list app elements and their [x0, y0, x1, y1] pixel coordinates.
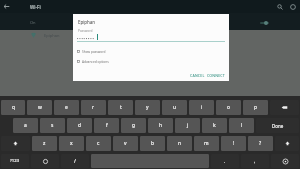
button[interactable]: Search: [273, 0, 286, 13]
button[interactable]: Epiphan: [0, 30, 300, 40]
button[interactable]: /: [61, 154, 89, 168]
staticText: z: [43, 140, 46, 147]
button[interactable]: .: [211, 154, 239, 168]
button[interactable]: l: [229, 118, 254, 133]
button[interactable]: Voice input: [271, 154, 299, 168]
staticText: f: [106, 122, 108, 129]
staticText: g: [132, 122, 135, 129]
staticText: q: [12, 104, 15, 111]
staticText: v: [124, 140, 127, 147]
button[interactable]: ,: [241, 154, 269, 168]
button[interactable]: f: [94, 118, 119, 133]
button[interactable]: Shift: [275, 136, 299, 151]
button[interactable]: Help: [286, 0, 299, 13]
staticText: e: [65, 104, 68, 111]
button[interactable]: Wi-Fi toggle: [259, 19, 271, 26]
staticText: b: [151, 140, 154, 147]
staticText: l: [241, 122, 243, 129]
button[interactable]: CONNECT: [204, 70, 228, 81]
button[interactable]: v: [113, 136, 138, 151]
staticText: d: [78, 122, 81, 129]
button[interactable]: Show password: [73, 49, 229, 54]
staticText: Show password: [82, 50, 106, 54]
staticText: s: [51, 122, 54, 129]
staticText: h: [159, 122, 163, 129]
staticText: i: [201, 104, 203, 111]
button[interactable]: b: [140, 136, 165, 151]
button[interactable]: !: [221, 136, 246, 151]
button[interactable]: k: [202, 118, 227, 133]
button[interactable]: p: [243, 100, 268, 115]
staticText: ?: [259, 140, 262, 147]
button[interactable]: g: [121, 118, 146, 133]
button[interactable]: t: [108, 100, 133, 115]
button[interactable]: u: [162, 100, 187, 115]
button[interactable]: Done: [256, 118, 299, 133]
button[interactable]: Backspace: [270, 100, 299, 115]
button[interactable]: z: [32, 136, 57, 151]
staticText: Advanced options: [82, 60, 109, 64]
staticText: p: [254, 104, 257, 111]
staticText: CONNECT: [207, 73, 225, 78]
staticText: n: [178, 140, 182, 147]
button[interactable]: ?123: [1, 154, 29, 168]
button[interactable]: q: [1, 100, 25, 115]
staticText: .: [224, 158, 226, 165]
button[interactable]: ?: [248, 136, 273, 151]
staticText: Epiphan: [44, 33, 60, 38]
button[interactable]: Advanced options: [73, 59, 229, 64]
staticText: j: [187, 122, 189, 129]
staticText: Done: [272, 123, 284, 129]
staticText: ,: [254, 158, 256, 165]
staticText: u: [173, 104, 177, 111]
staticText: ?123: [10, 158, 20, 164]
staticText: k: [213, 122, 216, 129]
staticText: r: [92, 104, 95, 111]
staticText: CANCEL: [190, 73, 205, 78]
staticText: a: [24, 122, 27, 129]
staticText: Password: [78, 29, 93, 33]
staticText: !: [233, 140, 235, 147]
button[interactable]: r: [81, 100, 106, 115]
button[interactable]: y: [135, 100, 160, 115]
button[interactable]: n: [167, 136, 192, 151]
staticText: w: [38, 104, 42, 111]
staticText: Epiphan: [78, 19, 96, 25]
button[interactable]: a: [13, 118, 38, 133]
button[interactable]: i: [189, 100, 214, 115]
button[interactable]: Shift: [1, 136, 30, 151]
button[interactable]: o: [216, 100, 241, 115]
button[interactable]: s: [40, 118, 65, 133]
button[interactable]: w: [27, 100, 52, 115]
button[interactable]: d: [67, 118, 92, 133]
button[interactable]: Navigate up: [0, 0, 13, 13]
button[interactable]: x: [59, 136, 84, 151]
staticText: c: [97, 140, 100, 147]
button[interactable]: m: [194, 136, 219, 151]
staticText: /: [74, 158, 76, 165]
button[interactable]: CANCEL: [187, 70, 208, 81]
button[interactable]: j: [175, 118, 200, 133]
staticText: m: [204, 140, 209, 147]
button[interactable]: Emoji: [31, 154, 59, 168]
button[interactable]: e: [54, 100, 79, 115]
staticText: On: [30, 20, 36, 25]
button[interactable]: h: [148, 118, 173, 133]
staticText: ••••••••: [77, 36, 95, 41]
staticText: Wi-Fi: [30, 4, 41, 10]
staticText: o: [227, 104, 230, 111]
staticText: y: [146, 104, 149, 111]
staticText: x: [70, 140, 73, 147]
staticText: t: [120, 104, 122, 111]
button[interactable]: c: [86, 136, 111, 151]
